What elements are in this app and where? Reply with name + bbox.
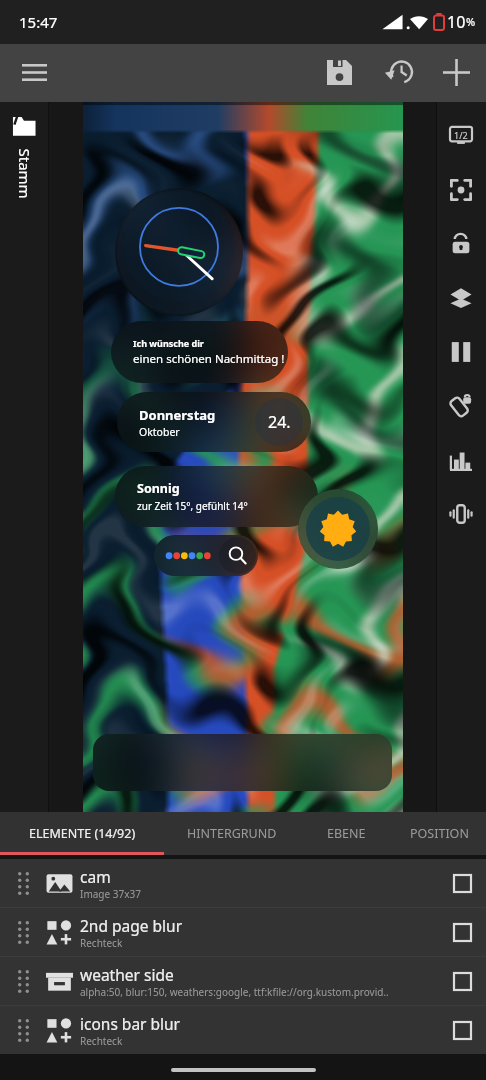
button[interactable]: Layers [436,271,486,325]
staticText: Donnerstag [139,406,216,424]
button[interactable]: HINTERGRUND [164,812,300,855]
button[interactable]: Google search [154,535,258,576]
button[interactable]: cam [0,859,486,907]
button[interactable]: Vibrate [436,487,486,541]
staticText: Rechteck [80,936,123,950]
button[interactable]: Select weather side [438,957,486,1005]
button[interactable]: POSITION [392,812,486,855]
staticText: alpha:50, blur:150, weathers:google, ttf… [80,985,389,999]
button[interactable]: Pause [436,325,486,379]
button[interactable]: Sonnig [115,466,318,527]
button[interactable]: EBENE [300,812,392,855]
staticText: einen schönen Nachmittag ! [133,351,285,367]
staticText: icons bar blur [80,1013,181,1034]
staticText: EBENE [327,825,366,842]
staticText: 1/2 [454,129,468,141]
button[interactable]: Lock [436,217,486,271]
button[interactable]: Stamm folder [0,102,49,812]
button[interactable]: Rotation lock [436,379,486,433]
button[interactable]: 2nd page blur [0,908,486,956]
button[interactable]: Screen 1 of 2 [436,109,486,163]
button[interactable]: Select cam [438,859,486,907]
staticText: POSITION [410,825,469,842]
staticText: HINTERGRUND [187,825,277,842]
staticText: Ich wünsche dir [133,337,204,349]
staticText: Rechteck [80,1034,123,1048]
staticText: cam [80,866,111,887]
button[interactable]: icons bar blur [0,1006,486,1054]
button[interactable]: Select 2nd page blur [438,908,486,956]
button[interactable]: Select icons bar blur [438,1006,486,1054]
staticText: Image 37x37 [80,887,141,901]
button[interactable]: ELEMENTE (14/92) [0,812,164,855]
button[interactable]: Donnerstag [117,392,311,452]
button[interactable]: Menu [6,44,62,100]
staticText: ELEMENTE (14/92) [29,825,136,842]
staticText: zur Zeit 15°, gefühlt 14° [137,499,248,513]
button[interactable]: Add [428,44,484,100]
button[interactable]: Statistics [436,433,486,487]
staticText: Oktober [139,425,180,439]
staticText: weather side [80,964,174,985]
staticText: 2nd page blur [80,915,183,936]
button[interactable]: History [372,44,428,100]
staticText: Sonnig [137,480,180,497]
button[interactable]: Save [311,44,367,100]
staticText: 15:47 [19,12,58,32]
button[interactable]: Ich wünsche dir [111,321,288,383]
button[interactable]: Focus [436,163,486,217]
staticText: % [466,14,476,29]
button[interactable]: weather side [0,957,486,1005]
staticText: 10 [447,11,466,33]
staticText: 24. [268,411,291,433]
